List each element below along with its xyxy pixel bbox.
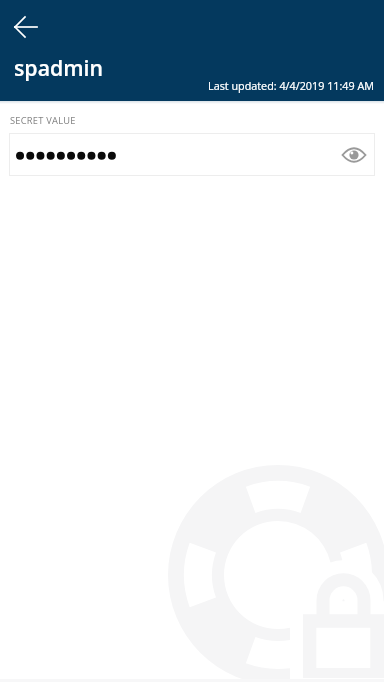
- button[interactable]: Back: [6, 7, 46, 47]
- staticText: SECRET VALUE: [10, 114, 76, 127]
- staticText: spadmin: [14, 53, 104, 82]
- button[interactable]: Show secret value: [9, 133, 375, 176]
- staticText: Last updated: 4/4/2019 11:49 AM: [208, 78, 375, 93]
- button[interactable]: Show secret value: [337, 138, 371, 172]
